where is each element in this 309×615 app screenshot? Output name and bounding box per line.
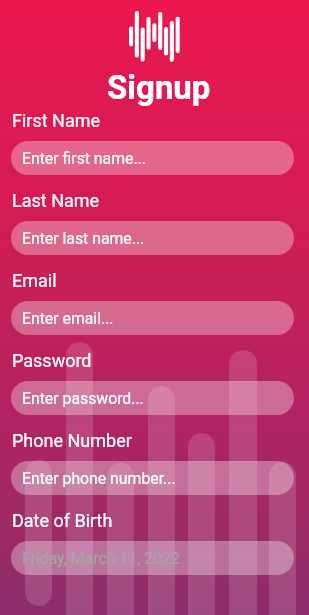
- staticText: Enter last name...: [22, 229, 145, 248]
- button[interactable]: Friday, March 11, 2022: [11, 541, 294, 575]
- staticText: Last Name: [12, 190, 100, 211]
- staticText: Enter phone number...: [22, 469, 176, 488]
- staticText: Enter password...: [22, 389, 144, 408]
- staticText: Signup: [107, 68, 211, 107]
- button[interactable]: Enter phone number...: [11, 461, 294, 495]
- other: App logo: [129, 11, 180, 62]
- button[interactable]: Enter email...: [11, 301, 294, 335]
- staticText: Date of Birth: [12, 510, 113, 531]
- button[interactable]: Enter password...: [11, 381, 294, 415]
- staticText: Email: [12, 270, 57, 291]
- staticText: Password: [12, 350, 92, 371]
- staticText: Enter first name...: [22, 149, 146, 168]
- button[interactable]: Enter last name...: [11, 221, 294, 255]
- staticText: Friday, March 11, 2022: [22, 549, 180, 568]
- staticText: Phone Number: [12, 430, 132, 451]
- button[interactable]: Enter first name...: [11, 141, 294, 175]
- staticText: First Name: [12, 110, 101, 131]
- staticText: Enter email...: [22, 309, 114, 328]
